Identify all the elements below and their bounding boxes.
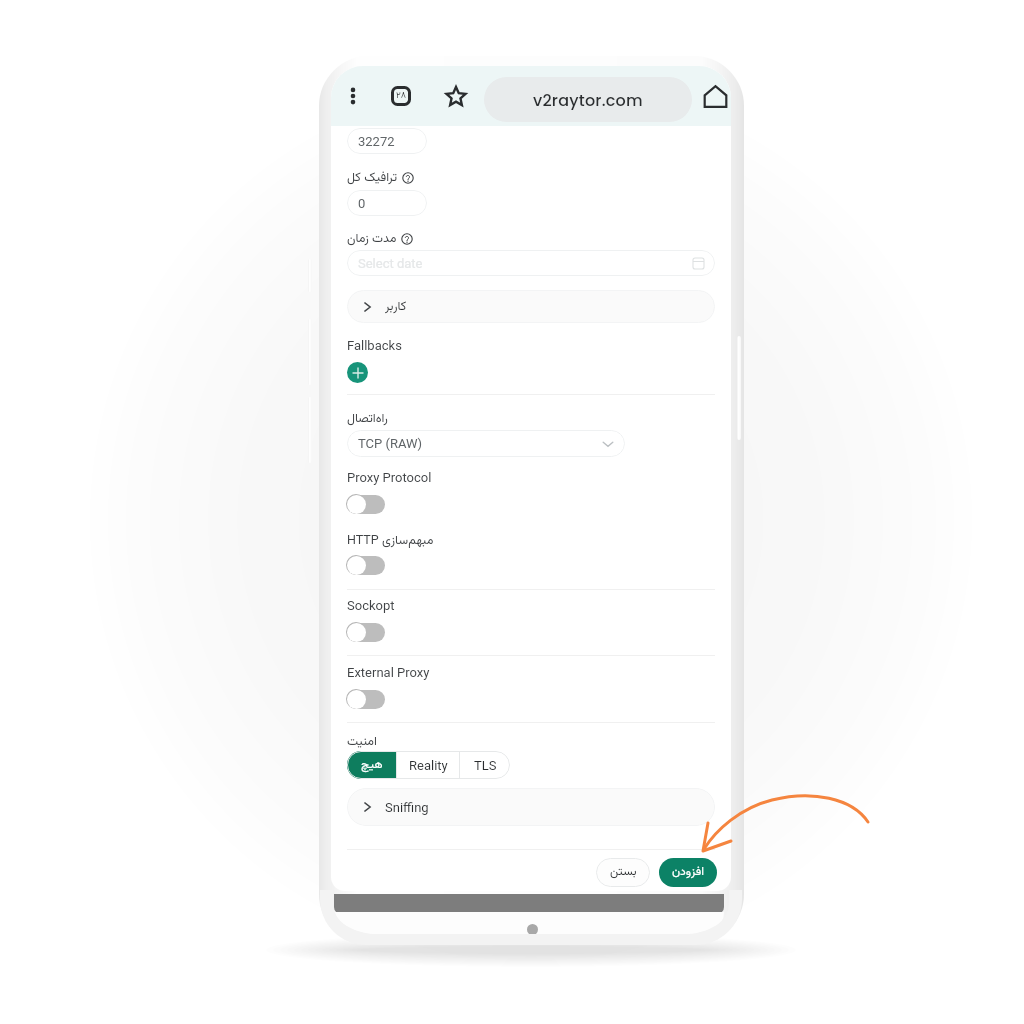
button[interactable]: Add fallback — [347, 362, 368, 383]
staticText: Reality — [409, 758, 448, 773]
staticText: TCP (RAW) — [358, 436, 423, 451]
staticText: راه‌اتصال — [347, 409, 388, 429]
button[interactable]: Bookmark — [437, 77, 475, 115]
staticText: Select date — [358, 256, 423, 271]
staticText: HTTP ‏مبهم‌سازی — [347, 531, 434, 551]
button[interactable]: External Proxy toggle — [346, 689, 386, 710]
button[interactable]: Proxy Protocol toggle — [346, 494, 386, 515]
staticText: 0 — [358, 196, 366, 211]
button[interactable]: Select date — [347, 250, 715, 276]
staticText: v2raytor.com — [533, 89, 643, 111]
button[interactable]: Sniffing — [347, 788, 715, 826]
staticText: Sockopt — [347, 598, 395, 613]
button[interactable]: HTTP ‏مبهم‌سازی toggle — [346, 555, 386, 576]
button[interactable]: Sockopt toggle — [346, 622, 386, 643]
staticText: بستن — [610, 863, 637, 882]
button[interactable]: افزودن — [659, 858, 717, 887]
staticText: افزودن — [672, 863, 704, 882]
button[interactable]: Tabs — [382, 77, 420, 115]
staticText: External Proxy — [347, 665, 430, 680]
staticText: TLS — [474, 758, 497, 773]
button[interactable]: TLS — [460, 751, 510, 779]
staticText: هیچ — [361, 756, 383, 775]
button[interactable]: 32272 — [347, 128, 427, 154]
staticText: Fallbacks — [347, 338, 402, 353]
button[interactable]: 0 — [347, 190, 427, 216]
button[interactable]: Home — [696, 77, 731, 115]
staticText: ۲۸ — [396, 89, 407, 103]
button[interactable]: v2raytor.com — [484, 77, 692, 122]
staticText: ترافیک کل — [347, 168, 398, 188]
button[interactable]: کاربر — [347, 290, 715, 323]
button[interactable]: More options — [334, 77, 372, 115]
staticText: کاربر — [385, 297, 407, 317]
button[interactable]: TCP (RAW) — [347, 430, 625, 457]
staticText: Sniffing — [385, 800, 429, 815]
staticText: مدت زمان — [347, 229, 397, 249]
staticText: Proxy Protocol — [347, 470, 432, 485]
button[interactable]: Reality — [397, 751, 459, 779]
button[interactable]: هیچ — [347, 751, 396, 779]
button[interactable]: بستن — [596, 858, 650, 887]
staticText: 32272 — [358, 134, 395, 149]
staticText: امنیت — [347, 732, 377, 752]
